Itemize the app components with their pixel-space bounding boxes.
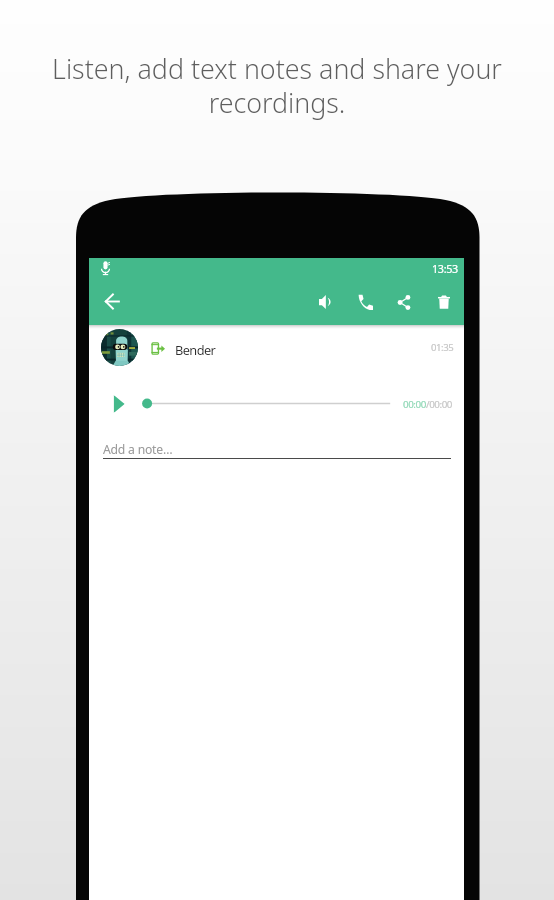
button[interactable]: Add a note… [89, 438, 464, 460]
staticText: 00:00 [403, 398, 426, 411]
button[interactable]: Play [113, 395, 125, 413]
staticText: Add a note… [103, 441, 173, 458]
staticText: 01:35 [431, 341, 454, 354]
button[interactable]: Delete [430, 288, 458, 316]
staticText: 13:53 [432, 261, 458, 276]
button[interactable]: Call back [351, 288, 379, 316]
staticText: Listen, add text notes and share your re… [0, 50, 554, 120]
button[interactable]: Share [390, 288, 418, 316]
staticText: Bender [175, 341, 216, 358]
button[interactable]: Speaker [311, 288, 339, 316]
staticText: /00:00 [426, 398, 452, 411]
button[interactable]: Navigate up [100, 289, 124, 313]
button[interactable]: Bender [89, 326, 464, 368]
